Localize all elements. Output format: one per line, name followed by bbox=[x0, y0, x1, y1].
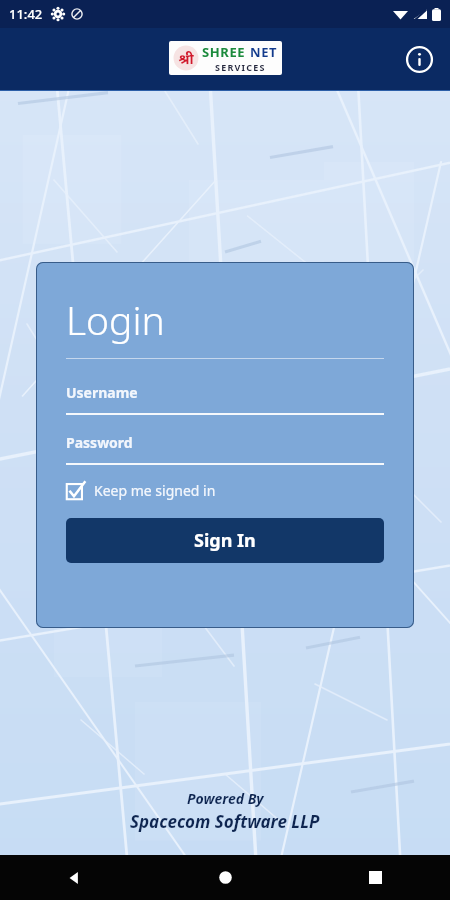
staticText: 11:42 bbox=[9, 5, 43, 23]
staticText: Login bbox=[66, 293, 165, 346]
staticText: श्री bbox=[178, 49, 194, 68]
button[interactable]: श्री bbox=[173, 43, 278, 73]
staticText: Sign In bbox=[194, 528, 256, 553]
button[interactable]: Back bbox=[0, 855, 150, 900]
staticText: Username bbox=[66, 383, 138, 402]
button[interactable]: Recent apps bbox=[300, 855, 450, 900]
staticText: Powered By bbox=[187, 789, 264, 808]
staticText: Spacecom Software LLP bbox=[130, 810, 320, 833]
staticText: Password bbox=[66, 433, 133, 452]
staticText: SERVICES bbox=[215, 61, 266, 73]
button[interactable]: Sign In bbox=[66, 518, 384, 563]
staticText: SHREE bbox=[202, 43, 250, 61]
button[interactable]: Home bbox=[150, 855, 300, 900]
button[interactable]: Information bbox=[402, 42, 436, 76]
button[interactable]: Keep me signed in bbox=[66, 481, 216, 500]
staticText: Keep me signed in bbox=[94, 481, 216, 500]
staticText: NET bbox=[250, 43, 278, 61]
